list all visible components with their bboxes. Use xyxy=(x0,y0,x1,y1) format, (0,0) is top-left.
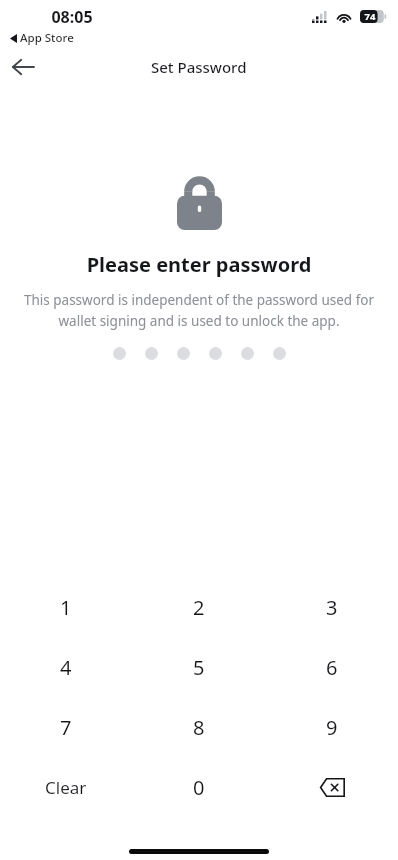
button[interactable]: Clear xyxy=(0,757,132,817)
button[interactable]: Backspace xyxy=(265,757,398,817)
staticText: 8 xyxy=(193,714,205,741)
staticText: Clear xyxy=(45,776,87,799)
button[interactable]: 9 xyxy=(265,697,398,757)
staticText: 5 xyxy=(193,654,205,681)
button[interactable]: 5 xyxy=(132,637,265,697)
button[interactable]: 3 xyxy=(265,577,398,637)
button[interactable]: 6 xyxy=(265,637,398,697)
staticText: Please enter password xyxy=(0,251,398,278)
button[interactable]: 7 xyxy=(0,697,132,757)
staticText: This password is independent of the pass… xyxy=(20,291,378,330)
staticText: App Store xyxy=(20,30,74,46)
staticText: 08:05 xyxy=(10,6,134,28)
staticText: 6 xyxy=(326,654,338,681)
staticText: 1 xyxy=(60,594,72,621)
staticText: 2 xyxy=(193,594,205,621)
staticText: 9 xyxy=(326,714,338,741)
button[interactable]: Back xyxy=(4,48,42,86)
staticText: Set Password xyxy=(151,57,247,77)
staticText: 7 xyxy=(60,714,72,741)
staticText: 74 xyxy=(362,10,378,23)
button[interactable]: 1 xyxy=(0,577,132,637)
button[interactable]: 2 xyxy=(132,577,265,637)
button[interactable]: 0 xyxy=(132,757,265,817)
button[interactable]: 4 xyxy=(0,637,132,697)
staticText: 4 xyxy=(60,654,72,681)
staticText: 3 xyxy=(326,594,338,621)
button[interactable]: 8 xyxy=(132,697,265,757)
staticText: 0 xyxy=(193,774,205,801)
